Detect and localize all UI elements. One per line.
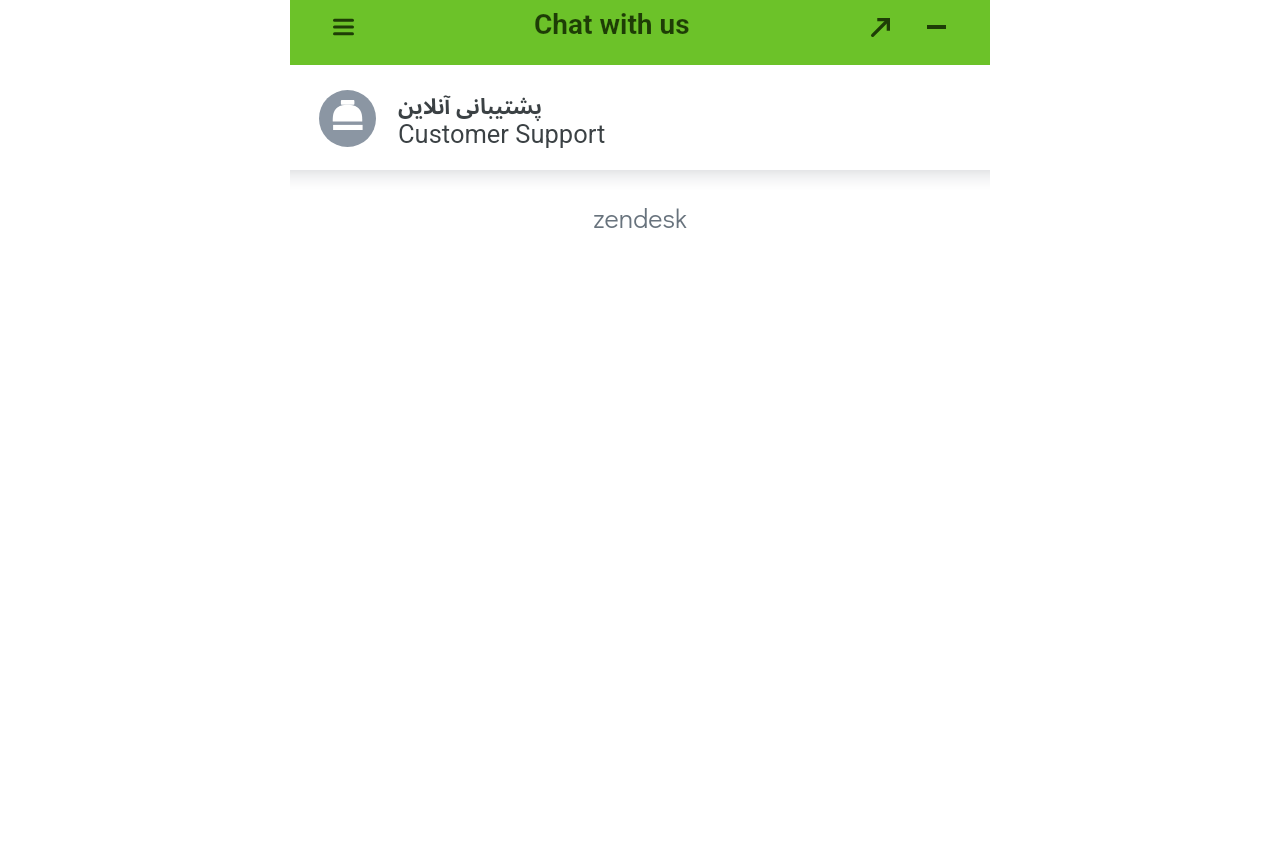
button[interactable]: Menu — [317, 4, 370, 50]
button[interactable]: Minimize — [913, 4, 960, 50]
button[interactable]: Open in new window — [857, 4, 904, 50]
staticText: Chat with us — [534, 8, 690, 41]
staticText: پشتیبانی آنلاین — [398, 84, 543, 129]
button[interactable]: پشتیبانی آنلاین — [290, 65, 990, 170]
staticText: zendesk — [290, 200, 990, 235]
staticText: Customer Support — [398, 119, 606, 149]
